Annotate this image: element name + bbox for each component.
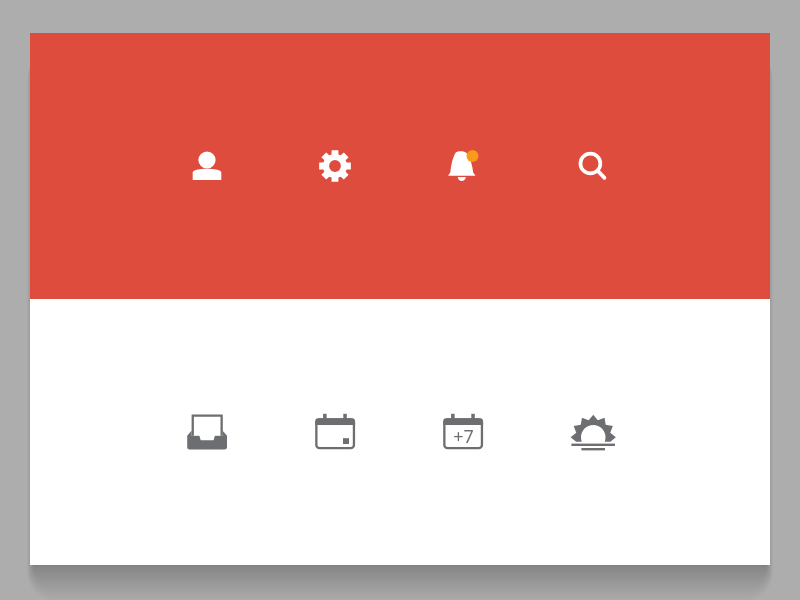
button[interactable]: Inbox xyxy=(183,408,231,456)
button[interactable]: Notifications xyxy=(439,142,487,190)
button[interactable]: Sunrise xyxy=(567,408,615,456)
button[interactable]: Calendar xyxy=(311,408,359,456)
button[interactable]: Profile xyxy=(183,142,231,190)
staticText: +7 xyxy=(453,424,474,449)
button[interactable]: Calendar plus 7 days xyxy=(439,408,487,456)
button[interactable]: Search xyxy=(567,142,615,190)
button[interactable]: Settings xyxy=(311,142,359,190)
